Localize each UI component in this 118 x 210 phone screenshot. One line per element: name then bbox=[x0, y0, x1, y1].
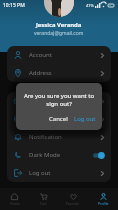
button[interactable]: Language bbox=[7, 110, 111, 128]
button[interactable]: Notification bbox=[7, 128, 111, 146]
staticText: Cart bbox=[40, 201, 47, 206]
staticText: Profile bbox=[98, 201, 109, 206]
staticText: Account bbox=[29, 51, 52, 59]
staticText: Home bbox=[10, 201, 20, 206]
button[interactable]: Payment bbox=[7, 92, 111, 110]
button[interactable]: Address bbox=[7, 64, 111, 82]
button[interactable]: Home bbox=[0, 188, 29, 210]
staticText: Language bbox=[29, 115, 58, 123]
staticText: 41% bbox=[86, 3, 94, 8]
button[interactable]: Account bbox=[7, 46, 111, 64]
button[interactable]: Dark Mode bbox=[7, 146, 111, 164]
staticText: Are you sure you want to sign out? bbox=[22, 92, 96, 108]
button[interactable]: Cancel bbox=[49, 115, 68, 123]
staticText: Log out bbox=[74, 115, 96, 123]
button[interactable]: Log out bbox=[74, 115, 96, 123]
staticText: Jessica Veranda bbox=[36, 21, 82, 29]
button[interactable]: Log out bbox=[7, 164, 111, 182]
button[interactable]: Favorite bbox=[58, 188, 88, 210]
staticText: Favorite bbox=[66, 201, 80, 206]
button[interactable]: Cart bbox=[29, 188, 58, 210]
staticText: Notification bbox=[29, 133, 62, 141]
staticText: Log out bbox=[29, 169, 51, 177]
staticText: Dark Mode bbox=[29, 151, 61, 159]
staticText: Payment bbox=[29, 97, 54, 105]
staticText: Address bbox=[29, 69, 52, 77]
staticText: verandaj@gmail.com bbox=[34, 30, 84, 37]
staticText: Cancel bbox=[49, 115, 68, 123]
staticText: 10:15 PM bbox=[3, 2, 25, 9]
button[interactable]: Profile bbox=[88, 188, 118, 210]
